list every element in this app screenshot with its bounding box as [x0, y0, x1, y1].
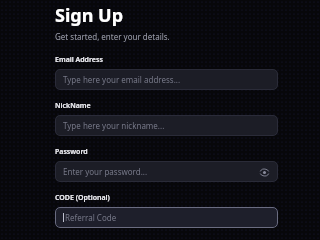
button[interactable]: Type here your nickname...: [55, 115, 278, 136]
staticText: Sign Up: [55, 3, 124, 28]
staticText: Get started, enter your details.: [55, 31, 170, 42]
staticText: Referral Code: [65, 212, 117, 223]
staticText: Enter your password...: [63, 166, 148, 177]
button[interactable]: Type here your email address...: [55, 69, 278, 90]
staticText: Email Address: [55, 55, 103, 65]
button[interactable]: Referral Code: [55, 207, 278, 228]
button[interactable]: Enter your password...: [55, 161, 278, 182]
staticText: CODE (Optional): [55, 193, 110, 203]
staticText: Type here your email address...: [63, 74, 181, 85]
staticText: Type here your nickname...: [63, 120, 165, 131]
staticText: Password: [55, 147, 88, 157]
staticText: NickName: [55, 101, 91, 111]
button[interactable]: Show password: [258, 166, 270, 178]
